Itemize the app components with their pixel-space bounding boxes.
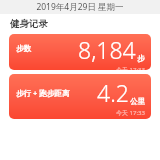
staticText: 2019年4月29日 星期一	[36, 1, 124, 13]
staticText: 4.2	[97, 77, 129, 108]
staticText: 步行 + 跑步距离	[16, 88, 70, 98]
button[interactable]: 步行 + 跑步距离	[9, 74, 151, 119]
staticText: 步数	[16, 44, 31, 53]
staticText: 今天 17:33	[116, 66, 145, 70]
staticText: 健身记录	[10, 18, 48, 30]
staticText: 公里	[130, 97, 145, 106]
staticText: 步	[137, 54, 145, 63]
button[interactable]: 步数	[9, 34, 151, 70]
staticText: 今天 17:33	[116, 109, 145, 117]
staticText: 8,184	[78, 34, 136, 65]
